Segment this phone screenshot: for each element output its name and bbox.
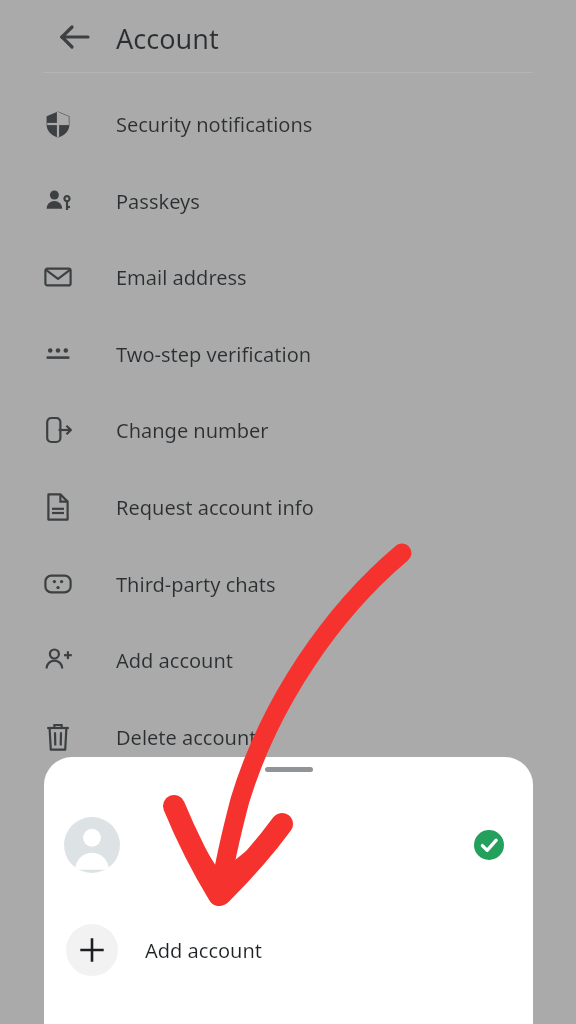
button[interactable]: Change number bbox=[0, 392, 576, 468]
staticText: Security notifications bbox=[116, 111, 313, 138]
button[interactable]: Add account bbox=[44, 912, 533, 988]
staticText: Add account bbox=[145, 937, 263, 964]
button[interactable]: Two-step verification bbox=[0, 316, 576, 392]
button[interactable] bbox=[44, 807, 533, 883]
staticText: Change number bbox=[116, 417, 269, 444]
button[interactable]: Email address bbox=[0, 239, 576, 315]
staticText: Passkeys bbox=[116, 188, 200, 215]
staticText: Email address bbox=[116, 264, 247, 291]
button[interactable]: Security notifications bbox=[0, 86, 576, 162]
button[interactable]: Add account bbox=[0, 622, 576, 698]
button[interactable]: Back bbox=[52, 14, 98, 60]
staticText: Request account info bbox=[116, 494, 314, 521]
staticText: Third-party chats bbox=[116, 571, 276, 598]
staticText: Account bbox=[116, 20, 219, 57]
button[interactable]: Passkeys bbox=[0, 163, 576, 239]
button[interactable]: Request account info bbox=[0, 469, 576, 545]
button[interactable]: Delete account bbox=[0, 699, 576, 775]
staticText: Delete account bbox=[116, 724, 257, 751]
button[interactable]: Third-party chats bbox=[0, 546, 576, 622]
staticText: Add account bbox=[116, 647, 234, 674]
staticText: Two-step verification bbox=[116, 341, 312, 368]
